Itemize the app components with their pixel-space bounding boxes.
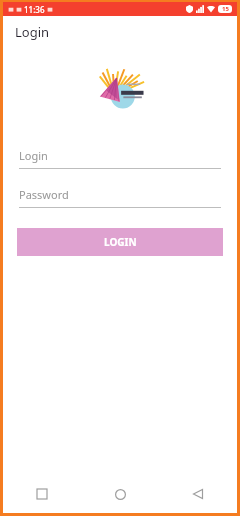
button[interactable]: Back xyxy=(159,475,237,513)
button[interactable]: Home xyxy=(81,475,159,513)
staticText: 11:36 xyxy=(24,4,45,15)
staticText: LOGIN xyxy=(104,235,137,249)
staticText: Login xyxy=(19,148,48,163)
button[interactable]: LOGIN xyxy=(17,228,223,256)
button[interactable]: Recent apps xyxy=(3,475,81,513)
button[interactable]: Password xyxy=(19,187,221,208)
staticText: Password xyxy=(19,187,69,202)
button[interactable]: Login xyxy=(19,148,221,169)
staticText: 15 xyxy=(222,5,229,13)
staticText: Login xyxy=(15,23,50,41)
